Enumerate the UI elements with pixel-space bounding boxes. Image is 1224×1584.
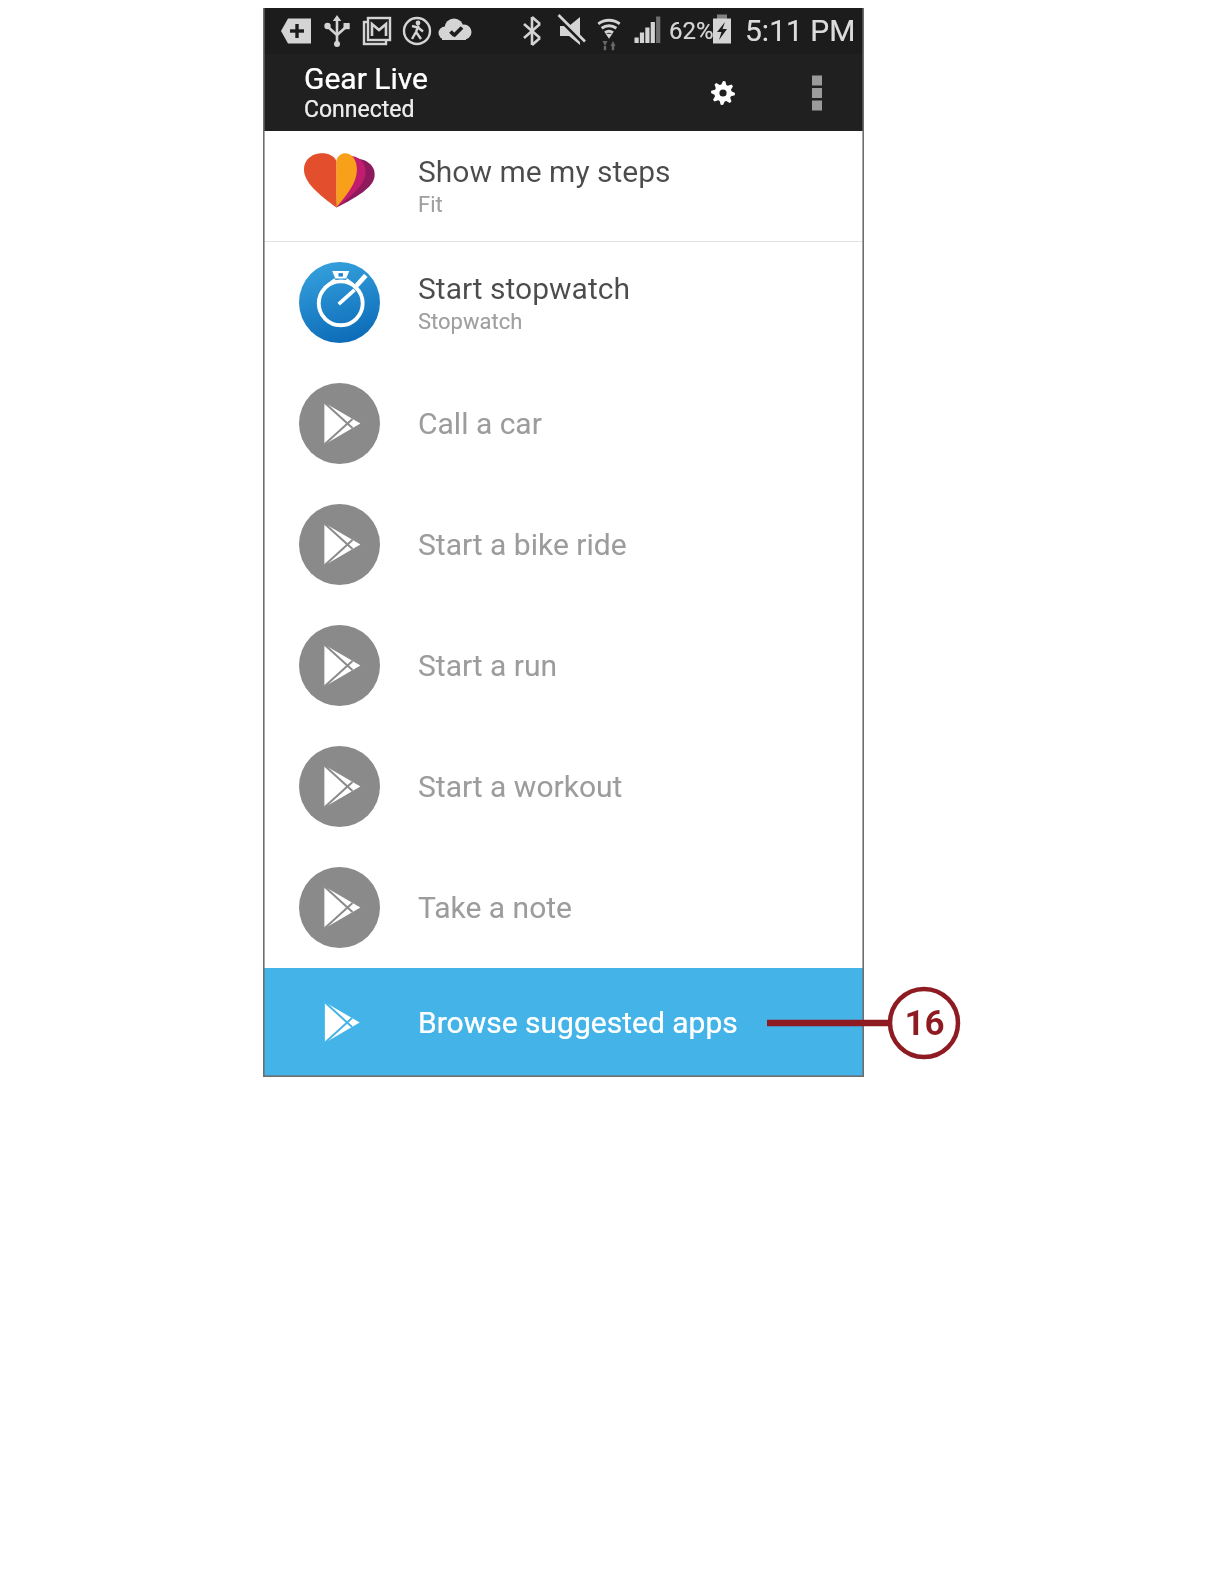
button[interactable]: Start a bike ride [263,484,864,605]
staticText: Call a car [418,406,542,441]
staticText: Take a note [418,890,572,925]
button[interactable]: Show me my steps [263,131,864,241]
staticText: Start a run [418,648,558,683]
button[interactable]: Start stopwatch [263,242,864,363]
button[interactable]: Start a run [263,605,864,726]
staticText: Start a bike ride [418,527,627,562]
staticText: Show me my steps [418,154,671,189]
button[interactable]: More options [789,65,845,121]
staticText: 62% [669,17,714,45]
button[interactable]: Browse suggested apps [263,968,864,1077]
staticText: 16 [904,1003,945,1044]
staticText: Browse suggested apps [418,1005,738,1040]
staticText: Gear Live [304,61,428,96]
button[interactable]: Start a workout [263,726,864,847]
staticText: Start a workout [418,769,623,804]
staticText: Start stopwatch [418,271,630,306]
button[interactable]: Take a note [263,847,864,968]
staticText: Fit [418,192,443,218]
button[interactable]: Settings [695,65,751,121]
staticText: Stopwatch [418,309,523,335]
staticText: 5:11 PM [745,13,856,48]
staticText: Connected [304,96,415,123]
button[interactable]: Call a car [263,363,864,484]
